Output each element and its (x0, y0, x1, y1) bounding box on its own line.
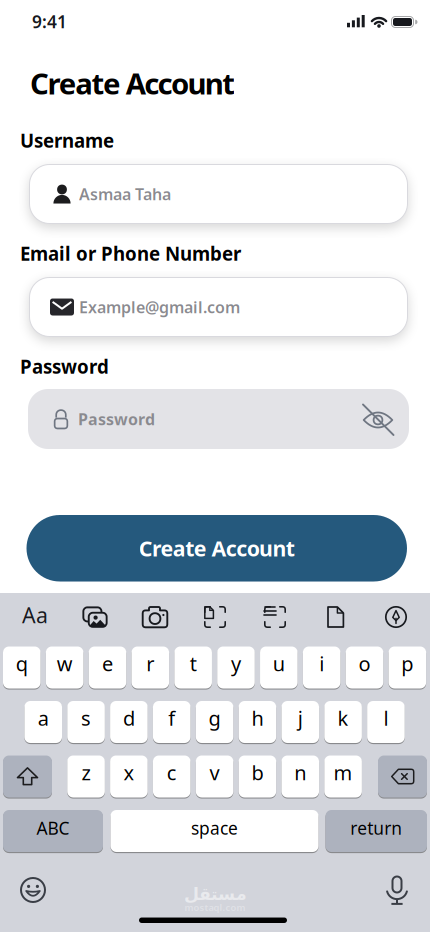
button[interactable]: Text formatting (18, 603, 52, 631)
staticText: Password (20, 354, 109, 379)
staticText: Aa (22, 601, 48, 629)
staticText: t (190, 650, 197, 677)
staticText: b (251, 759, 263, 786)
button[interactable]: Delete (378, 755, 427, 797)
button[interactable]: g (196, 701, 233, 743)
button[interactable]: u (260, 646, 298, 688)
button[interactable]: i (303, 646, 340, 688)
staticText: i (319, 650, 324, 677)
button[interactable]: o (346, 646, 383, 688)
staticText: Email or Phone Number (20, 241, 241, 266)
button[interactable]: v (196, 755, 233, 797)
button[interactable]: Shift (3, 755, 52, 797)
staticText: d (123, 705, 135, 731)
button[interactable]: c (153, 755, 190, 797)
button[interactable]: w (46, 646, 83, 688)
button[interactable]: f (153, 701, 190, 743)
button[interactable]: e (89, 646, 126, 688)
button[interactable]: r (131, 646, 169, 688)
button[interactable]: Camera (135, 603, 175, 631)
staticText: g (209, 705, 221, 731)
staticText: Create Account (30, 63, 235, 102)
staticText: 9:41 (32, 10, 67, 33)
button[interactable]: y (217, 646, 255, 688)
button[interactable]: Scan text (255, 603, 295, 631)
button[interactable]: n (281, 755, 319, 797)
staticText: k (338, 705, 349, 731)
button[interactable]: Markup (376, 603, 416, 631)
staticText: r (146, 650, 154, 677)
button[interactable]: t (174, 646, 212, 688)
staticText: c (167, 759, 177, 786)
button[interactable]: p (389, 646, 426, 688)
staticText: w (57, 650, 73, 677)
staticText: z (82, 759, 91, 786)
staticText: Asmaa Taha (79, 183, 171, 205)
staticText: l (383, 705, 388, 731)
staticText: ABC (36, 816, 69, 839)
staticText: u (273, 650, 285, 677)
button[interactable]: a (24, 701, 62, 743)
staticText: m (334, 759, 353, 786)
button[interactable]: Dictation (377, 872, 417, 908)
button[interactable]: q (3, 646, 41, 688)
staticText: j (298, 705, 303, 731)
staticText: Create Account (139, 534, 295, 562)
staticText: n (294, 759, 306, 786)
button[interactable]: ABC (3, 810, 103, 852)
button[interactable]: Show password (356, 398, 400, 442)
button[interactable]: h (239, 701, 276, 743)
button[interactable]: Documents (316, 603, 356, 631)
button[interactable]: Emoji (13, 872, 53, 908)
button[interactable]: l (367, 701, 405, 743)
button[interactable]: x (110, 755, 148, 797)
staticText: s (81, 705, 91, 731)
button[interactable]: return (325, 810, 427, 852)
staticText: q (16, 650, 28, 677)
staticText: Password (78, 408, 155, 430)
button[interactable]: k (324, 701, 362, 743)
button[interactable]: Scan document (195, 603, 235, 631)
button[interactable]: b (239, 755, 276, 797)
button[interactable]: d (110, 701, 148, 743)
staticText: Example@gmail.com (79, 296, 240, 318)
button[interactable]: j (281, 701, 319, 743)
staticText: mostaql.com (184, 901, 245, 914)
button[interactable]: z (67, 755, 105, 797)
staticText: f (168, 705, 175, 731)
button[interactable]: space (110, 810, 318, 852)
staticText: e (102, 650, 113, 677)
staticText: o (358, 650, 370, 677)
staticText: a (38, 705, 49, 731)
button[interactable]: s (67, 701, 105, 743)
staticText: Username (20, 128, 114, 153)
staticText: p (401, 650, 413, 677)
button[interactable]: Password (28, 389, 409, 449)
button[interactable]: Create Account (26, 515, 407, 581)
staticText: مستقل (183, 884, 246, 904)
button[interactable]: Example@gmail.com (29, 277, 408, 337)
button[interactable]: Asmaa Taha (29, 164, 408, 224)
staticText: x (123, 759, 134, 786)
button[interactable]: m (324, 755, 362, 797)
staticText: v (210, 759, 220, 786)
staticText: h (251, 705, 263, 731)
button[interactable]: Photos (75, 603, 115, 631)
staticText: space (191, 816, 238, 839)
staticText: y (231, 650, 241, 677)
staticText: return (350, 816, 402, 839)
